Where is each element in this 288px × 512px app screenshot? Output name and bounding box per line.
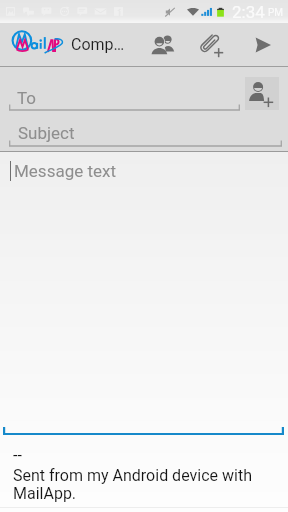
staticText: 2:34 <box>232 2 265 22</box>
staticText: -- <box>13 446 22 465</box>
staticText: Comp… <box>71 35 125 54</box>
button[interactable]: Add contact <box>245 77 279 110</box>
staticText: Subject <box>18 123 75 143</box>
staticText: Sent from my Android device with MailApp… <box>13 466 271 503</box>
button[interactable]: Attach file <box>188 23 234 67</box>
staticText: PM <box>268 7 284 19</box>
staticText: Message text <box>14 161 116 181</box>
button[interactable]: Send <box>240 23 286 67</box>
button[interactable]: Contacts <box>139 23 185 67</box>
staticText: To <box>17 88 37 108</box>
